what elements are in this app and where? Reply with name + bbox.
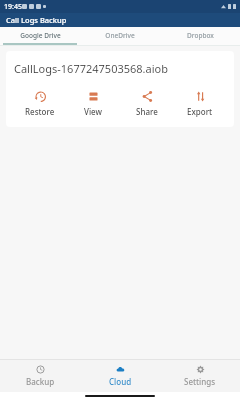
staticText: Call Logs Backup	[6, 15, 67, 25]
staticText: Settings	[184, 376, 216, 387]
staticText: Backup	[26, 376, 55, 387]
button[interactable]: Share	[123, 88, 171, 119]
button[interactable]: Dropbox	[160, 27, 240, 43]
staticText: Dropbox	[187, 31, 214, 40]
staticText: 19:45	[4, 2, 22, 12]
button[interactable]: CallLogs-1677247503568.aiob	[6, 51, 234, 127]
staticText: Export	[187, 106, 213, 117]
staticText: Google Drive	[20, 31, 61, 40]
staticText: Restore	[25, 106, 55, 117]
staticText: View	[84, 106, 102, 117]
staticText: Cloud	[109, 376, 132, 387]
button[interactable]: Restore	[16, 88, 64, 119]
button[interactable]: OneDrive	[80, 27, 160, 43]
staticText: CallLogs-1677247503568.aiob	[14, 61, 234, 76]
button[interactable]: Google Drive	[0, 27, 80, 43]
button[interactable]: Cloud	[80, 362, 160, 390]
staticText: Share	[136, 106, 158, 117]
button[interactable]: Settings	[160, 362, 240, 390]
button[interactable]: View	[69, 88, 117, 119]
button[interactable]: Backup	[0, 362, 80, 390]
staticText: OneDrive	[105, 31, 135, 40]
button[interactable]: Export	[176, 88, 224, 119]
